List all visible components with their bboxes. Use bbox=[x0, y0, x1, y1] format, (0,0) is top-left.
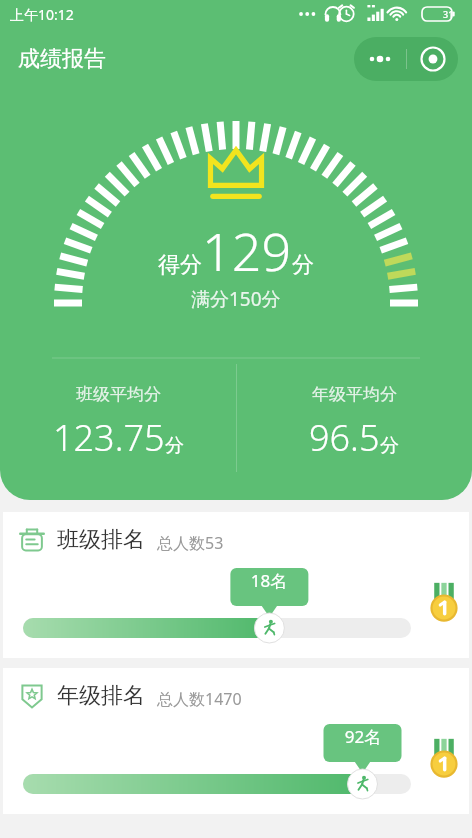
staticText: 年级排名 bbox=[57, 682, 145, 710]
staticText: 成绩报告 bbox=[18, 45, 106, 73]
staticText: 92名 bbox=[324, 725, 402, 748]
button[interactable]: 班级平均分 bbox=[0, 358, 236, 462]
staticText: 31 bbox=[443, 8, 454, 20]
staticText: 班级排名 bbox=[57, 526, 145, 554]
staticText: 18名 bbox=[230, 569, 308, 592]
button[interactable]: 年级平均分 bbox=[236, 358, 472, 462]
staticText: 总人数1470 bbox=[157, 688, 242, 710]
staticText: 总人数53 bbox=[157, 532, 224, 554]
staticText: 班级平均分 bbox=[76, 384, 161, 405]
button[interactable]: 年级排名 bbox=[3, 668, 469, 814]
staticText: 满分150分 bbox=[191, 286, 281, 312]
staticText: 分 bbox=[165, 434, 184, 458]
button[interactable]: Record bbox=[407, 37, 458, 81]
staticText: 分 bbox=[292, 251, 314, 279]
staticText: 分 bbox=[380, 434, 399, 458]
staticText: 96.5 bbox=[309, 413, 380, 462]
button[interactable]: 班级排名 bbox=[3, 512, 469, 658]
staticText: 123.75 bbox=[53, 413, 165, 462]
staticText: 年级平均分 bbox=[312, 384, 397, 405]
button[interactable]: More options bbox=[354, 37, 406, 81]
staticText: 得分 bbox=[158, 251, 202, 279]
staticText: 上午10:12 bbox=[10, 5, 74, 24]
staticText: 129 bbox=[202, 215, 292, 286]
